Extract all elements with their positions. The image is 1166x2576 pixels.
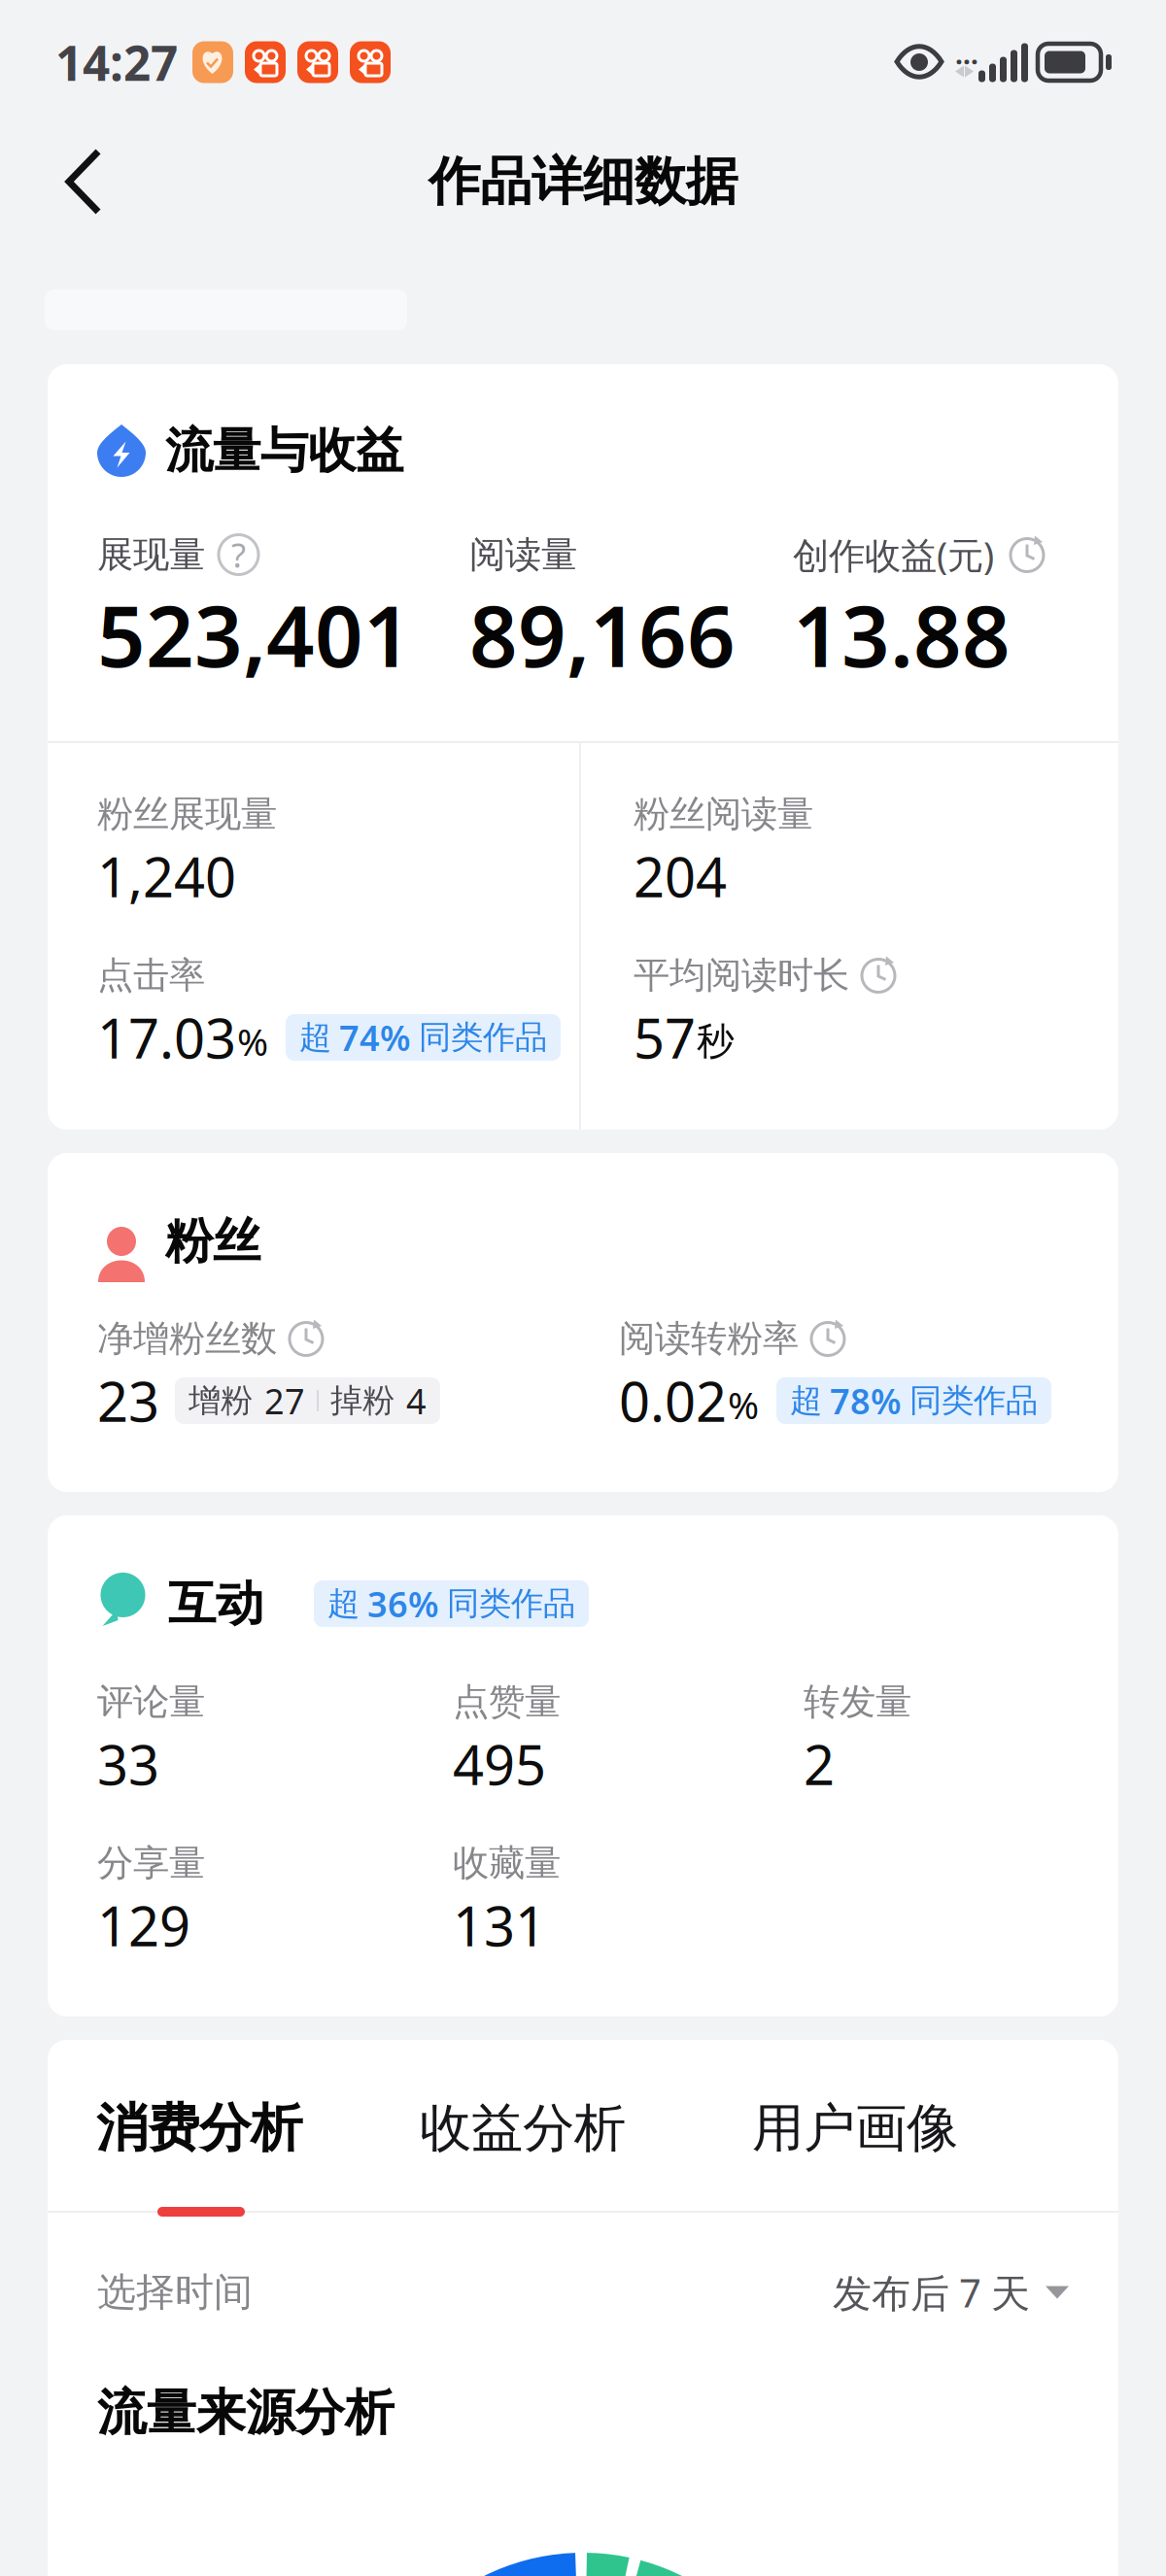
button[interactable]: 用户画像 (737, 2097, 973, 2159)
staticText: 同类作品 (909, 1381, 1038, 1420)
button[interactable]: 消费分析 (82, 2097, 317, 2159)
staticText: 用户画像 (752, 2096, 958, 2160)
staticText: % (728, 1380, 759, 1429)
staticText: 超 (327, 1584, 360, 1624)
staticText: 131 (453, 1889, 546, 1961)
staticText: 2 (804, 1728, 835, 1800)
staticText: 17.03 (97, 1001, 236, 1074)
staticText: 超 (790, 1381, 822, 1420)
staticText: 204 (634, 840, 727, 912)
staticText: 创作收益(元) (793, 531, 994, 579)
staticText: 流量与收益 (165, 421, 403, 480)
staticText: 评论量 (97, 1680, 205, 1724)
staticText: 互动 (168, 1574, 263, 1633)
staticText: 消费分析 (96, 2096, 302, 2160)
staticText: 增粉 (189, 1381, 253, 1420)
staticText: 495 (453, 1728, 546, 1800)
staticText: 净增粉丝数 (97, 1316, 277, 1361)
staticText: 同类作品 (447, 1584, 575, 1624)
staticText: 13.88 (793, 578, 1011, 690)
staticText: 4 (406, 1377, 427, 1424)
staticText: 粉丝阅读量 (634, 792, 813, 836)
staticText: 展现量 (97, 532, 205, 577)
staticText: % (237, 1016, 268, 1066)
staticText: 阅读转粉率 (619, 1316, 799, 1361)
staticText: 阅读量 (469, 532, 577, 577)
staticText: 33 (97, 1728, 159, 1800)
staticText: 129 (97, 1889, 190, 1961)
staticText: 收藏量 (453, 1841, 561, 1885)
staticText: 78% (830, 1377, 902, 1424)
staticText: 1,240 (97, 840, 236, 912)
staticText: 超 (299, 1017, 331, 1057)
staticText: 同类作品 (419, 1017, 547, 1057)
staticText: 0.02 (619, 1365, 727, 1437)
staticText: 分享量 (97, 1841, 205, 1885)
staticText: 5G (955, 36, 984, 72)
staticText: 点击率 (97, 953, 205, 998)
staticText: 23 (97, 1365, 159, 1437)
staticText: 转发量 (804, 1680, 911, 1724)
button[interactable]: 返回 (36, 125, 131, 238)
staticText: 粉丝展现量 (97, 792, 277, 836)
staticText: 89,166 (469, 578, 736, 690)
staticText: 作品详细数据 (429, 150, 737, 213)
staticText: 14:27 (55, 30, 178, 94)
staticText: 点赞量 (453, 1680, 561, 1724)
staticText: 收益分析 (420, 2096, 626, 2160)
staticText: 选择时间 (97, 2268, 253, 2316)
staticText: 平均阅读时长 (634, 953, 849, 998)
staticText: 74% (339, 1014, 411, 1061)
staticText: 粉丝 (165, 1212, 260, 1271)
staticText: 57 (634, 1001, 696, 1074)
staticText: 流量来源分析 (97, 2383, 394, 2443)
button[interactable]: 发布后 7 天 (833, 2268, 1069, 2317)
staticText: ? (231, 532, 246, 577)
staticText: 秒 (697, 1018, 735, 1064)
staticText: 523,401 (97, 578, 412, 690)
staticText: 36% (367, 1580, 439, 1627)
staticText: 掉粉 (330, 1381, 394, 1420)
button[interactable]: 收益分析 (405, 2097, 640, 2159)
staticText: 发布后 7 天 (833, 2267, 1030, 2318)
staticText: 27 (264, 1377, 305, 1424)
